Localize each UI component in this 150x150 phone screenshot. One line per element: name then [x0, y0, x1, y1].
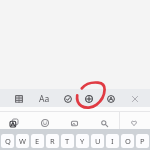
button[interactable]: Y	[76, 134, 89, 148]
button[interactable]: Markup	[105, 93, 117, 105]
staticText: I	[111, 136, 114, 146]
button[interactable]: Table	[13, 93, 25, 105]
staticText: P	[140, 136, 145, 146]
staticText: W	[19, 136, 26, 146]
staticText: R	[50, 136, 55, 146]
button[interactable]: Apps	[7, 116, 21, 130]
staticText: T	[65, 136, 70, 146]
staticText: E	[35, 136, 40, 146]
button[interactable]: P	[136, 134, 149, 148]
staticText: Q	[5, 136, 11, 146]
staticText: Y	[80, 136, 85, 146]
button[interactable]: Q	[1, 134, 14, 148]
button[interactable]: I	[106, 134, 119, 148]
button[interactable]: R	[46, 134, 59, 148]
button[interactable]: O	[121, 134, 134, 148]
staticText: U	[95, 136, 101, 146]
button[interactable]: Add attachment	[83, 93, 95, 105]
button[interactable]: Search	[97, 116, 111, 130]
button[interactable]: W	[16, 134, 29, 148]
button[interactable]: Emoji	[38, 116, 52, 130]
staticText: Aa	[39, 93, 50, 105]
button[interactable]: Close	[129, 93, 141, 105]
button[interactable]: T	[61, 134, 74, 148]
button[interactable]: Favorites	[127, 116, 141, 130]
staticText: O	[125, 136, 131, 146]
button[interactable]: U	[91, 134, 104, 148]
button[interactable]: Photos	[67, 116, 81, 130]
button[interactable]: Checklist	[62, 93, 74, 105]
button[interactable]: E	[31, 134, 44, 148]
button[interactable]: Text format	[37, 92, 51, 106]
